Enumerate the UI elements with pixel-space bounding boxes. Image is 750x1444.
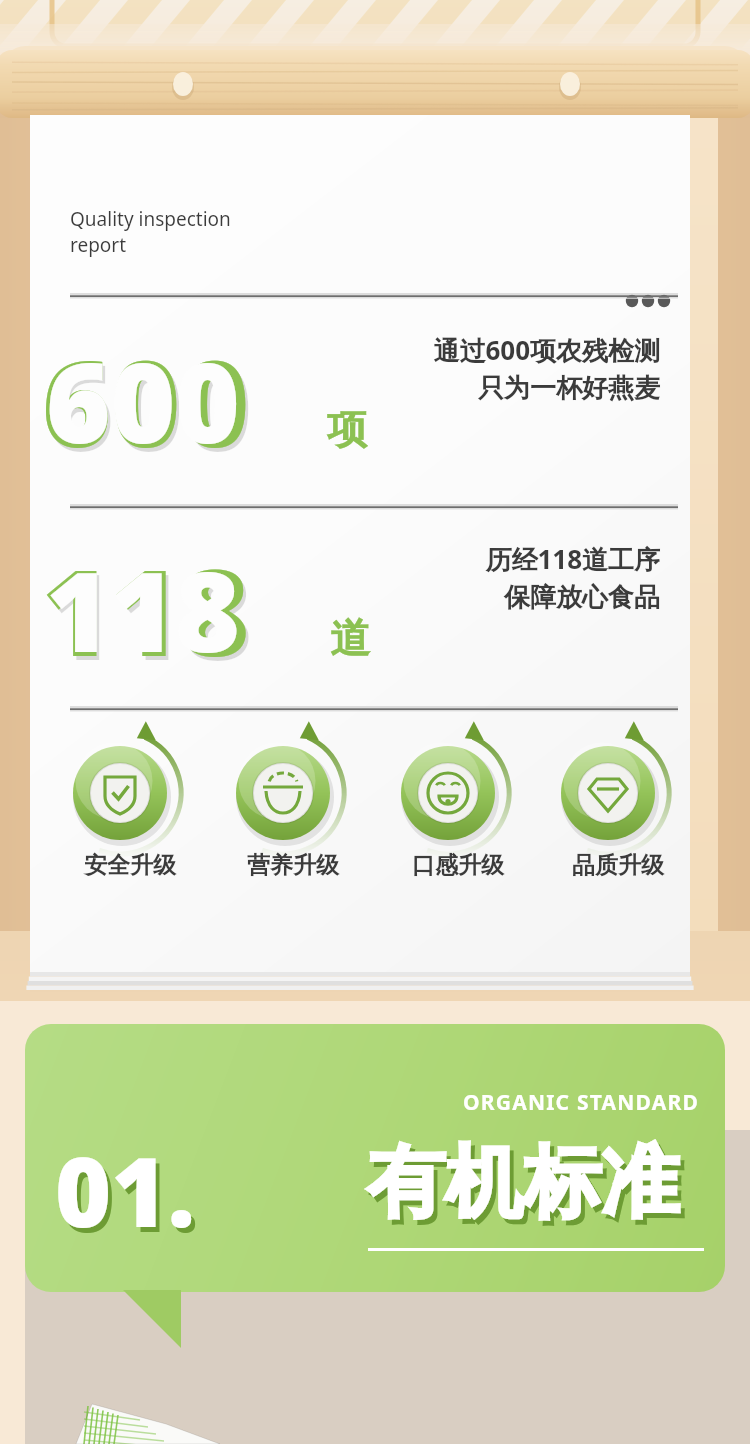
button[interactable]: More options: [622, 281, 670, 321]
staticText: 600: [46, 325, 240, 475]
staticText: 口感升级: [412, 851, 504, 880]
staticText: 01.: [59, 1129, 200, 1260]
staticText: Quality inspection report: [70, 206, 231, 258]
staticText: 600: [45, 325, 253, 486]
staticText: 118: [46, 534, 240, 684]
button[interactable]: 营养升级: [221, 737, 365, 887]
staticText: 品质升级: [572, 851, 664, 880]
button[interactable]: ORGANIC STANDARD: [25, 1024, 725, 1314]
staticText: 有机标准: [371, 1139, 683, 1237]
staticText: 118: [42, 530, 250, 691]
button[interactable]: 口感升级: [386, 737, 530, 887]
staticText: 通过600项农残检测 只为一杯好燕麦: [360, 332, 660, 405]
staticText: 项: [327, 404, 367, 454]
button[interactable]: 安全升级: [58, 737, 202, 887]
staticText: 安全升级: [84, 851, 176, 880]
staticText: 600: [42, 321, 250, 482]
staticText: 01.: [55, 1124, 196, 1255]
staticText: ORGANIC STANDARD: [463, 1088, 699, 1117]
button[interactable]: 品质升级: [546, 737, 690, 887]
staticText: 道: [330, 613, 370, 663]
staticText: 有机标准: [367, 1134, 679, 1232]
staticText: 历经118道工序 保障放心食品: [360, 541, 660, 614]
staticText: 营养升级: [247, 851, 339, 880]
staticText: 118: [45, 534, 253, 695]
